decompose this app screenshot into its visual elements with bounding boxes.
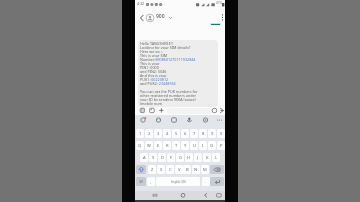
- staticText: E: [157, 143, 160, 149]
- staticText: This is your: [140, 61, 160, 65]
- button[interactable]: J: [194, 153, 202, 162]
- staticText: Z: [151, 167, 154, 173]
- staticText: You can get the PUK numbers for: [140, 89, 198, 93]
- button[interactable]: [167, 108, 213, 114]
- staticText: (mobile num: [140, 101, 162, 105]
- staticText: 5: [175, 131, 178, 137]
- staticText: !#1: [139, 180, 144, 184]
- button[interactable]: O: [208, 141, 216, 150]
- button[interactable]: B: [183, 165, 191, 174]
- button[interactable]: W: [145, 141, 153, 150]
- staticText: 2: [148, 131, 151, 137]
- staticText: and PIN2: 5046: [140, 69, 167, 73]
- button[interactable]: T: [172, 141, 180, 150]
- staticText: C: [169, 167, 172, 173]
- staticText: Number:8908601270111932844: [140, 57, 196, 61]
- staticText: other registered numbers under: [140, 93, 197, 97]
- button[interactable]: G: [176, 153, 184, 162]
- button[interactable]: ,: [147, 177, 155, 186]
- staticText: R: [166, 143, 169, 149]
- staticText: And this is your: [140, 73, 167, 77]
- staticText: A: [143, 155, 146, 161]
- staticText: V: [178, 167, 181, 173]
- staticText: X: [160, 167, 163, 173]
- button[interactable]: 4: [163, 129, 171, 138]
- staticText: W: [147, 143, 151, 149]
- button[interactable]: H: [185, 153, 193, 162]
- button[interactable]: 6: [181, 129, 189, 138]
- button[interactable]: .: [202, 177, 210, 186]
- staticText: Looking for your SIM details?: [140, 45, 191, 49]
- button[interactable]: Q: [136, 141, 144, 150]
- staticText: 1: [139, 131, 142, 137]
- button[interactable]: Z: [148, 165, 156, 174]
- button[interactable]: 1: [136, 129, 144, 138]
- staticText: Y: [184, 143, 187, 149]
- button[interactable]: English (US): [156, 177, 200, 186]
- staticText: 47%: [216, 1, 222, 5]
- staticText: J: [197, 155, 199, 161]
- staticText: T: [175, 143, 178, 149]
- staticText: English (US): [171, 180, 186, 184]
- staticText: This is your SIM: [140, 53, 168, 57]
- staticText: H: [187, 155, 191, 161]
- button[interactable]: N: [192, 165, 200, 174]
- button[interactable]: 0: [217, 129, 225, 138]
- button[interactable]: I: [199, 141, 207, 150]
- button[interactable]: C: [166, 165, 174, 174]
- button[interactable]: K: [203, 153, 211, 162]
- staticText: ,: [150, 179, 152, 184]
- button[interactable]: 2: [145, 129, 153, 138]
- button[interactable]: S: [149, 153, 157, 162]
- button[interactable]: E: [154, 141, 162, 150]
- staticText: B: [186, 167, 189, 173]
- button[interactable]: 7: [190, 129, 198, 138]
- staticText: L: [215, 155, 218, 161]
- staticText: .: [205, 179, 207, 184]
- staticText: 9: [211, 131, 214, 137]
- staticText: 3: [157, 131, 160, 137]
- staticText: 4:32: [137, 1, 145, 6]
- staticText: your ID by sending 9XKA (space): [140, 97, 196, 101]
- button[interactable]: 900: [156, 13, 165, 20]
- staticText: N: [194, 167, 198, 173]
- staticText: D: [161, 155, 164, 161]
- staticText: S: [152, 155, 155, 161]
- button[interactable]: 9: [208, 129, 216, 138]
- staticText: G: [179, 155, 182, 161]
- button[interactable]: U: [190, 141, 198, 150]
- button[interactable]: 8: [199, 129, 207, 138]
- button[interactable]: [210, 165, 224, 174]
- button[interactable]: Hello TANUSHREE!!: [138, 40, 218, 107]
- button[interactable]: R: [163, 141, 171, 150]
- staticText: PIN1 :0000: [140, 65, 159, 69]
- button[interactable]: !#1: [136, 177, 146, 186]
- staticText: O: [210, 143, 214, 149]
- button[interactable]: M: [201, 165, 209, 174]
- button[interactable]: [136, 165, 146, 174]
- staticText: 8: [202, 131, 205, 137]
- staticText: 6: [184, 131, 187, 137]
- button[interactable]: X: [157, 165, 165, 174]
- staticText: 4: [166, 131, 169, 137]
- staticText: 900: [156, 13, 165, 20]
- button[interactable]: [210, 177, 224, 186]
- staticText: and PUK2: 23448554: [140, 81, 176, 85]
- button[interactable]: D: [158, 153, 166, 162]
- button[interactable]: V: [175, 165, 183, 174]
- button[interactable]: A: [140, 153, 148, 162]
- button[interactable]: Y: [181, 141, 189, 150]
- staticText: 7: [193, 131, 196, 137]
- staticText: M: [203, 167, 207, 173]
- button[interactable]: 3: [154, 129, 162, 138]
- staticText: 0: [220, 131, 223, 137]
- button[interactable]: [221, 14, 224, 21]
- button[interactable]: [140, 15, 144, 21]
- staticText: Here we go :-: [140, 49, 163, 53]
- staticText: K: [206, 155, 209, 161]
- staticText: Hello TANUSHREE!!: [140, 41, 173, 45]
- button[interactable]: P: [217, 141, 225, 150]
- button[interactable]: F: [167, 153, 175, 162]
- button[interactable]: 5: [172, 129, 180, 138]
- button[interactable]: L: [212, 153, 220, 162]
